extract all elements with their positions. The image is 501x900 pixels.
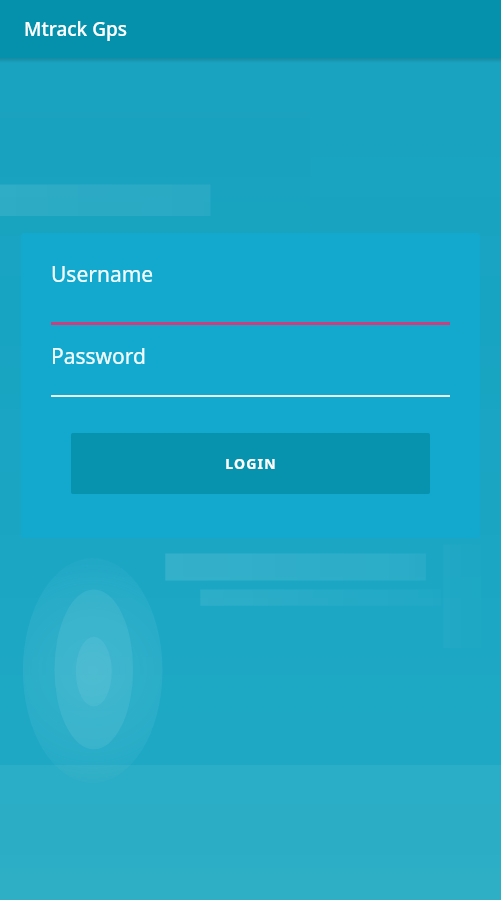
staticText: LOGIN bbox=[225, 454, 277, 473]
button[interactable]: Username bbox=[21, 257, 480, 325]
button[interactable]: Password bbox=[21, 339, 480, 397]
button[interactable]: LOGIN bbox=[71, 433, 430, 494]
staticText: Mtrack Gps bbox=[24, 16, 127, 42]
staticText: Username bbox=[51, 260, 154, 289]
staticText: Password bbox=[51, 342, 146, 371]
